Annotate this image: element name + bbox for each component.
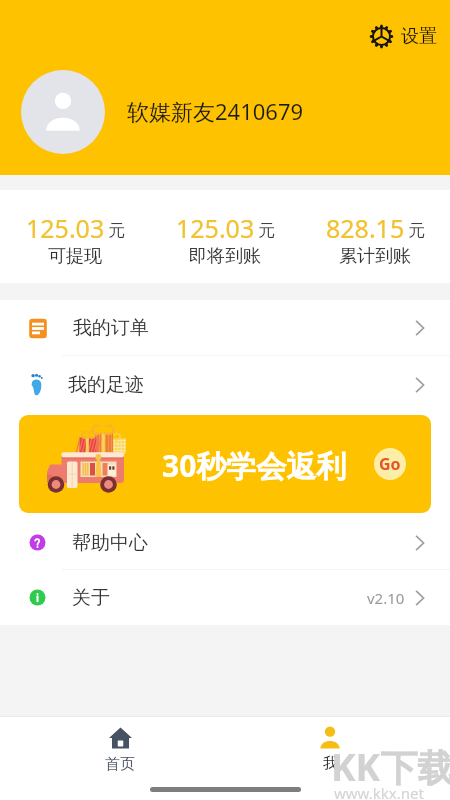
button[interactable]: 125.03 xyxy=(150,190,300,283)
staticText: 125.03 xyxy=(176,211,255,245)
staticText: 即将到账 xyxy=(189,245,261,268)
staticText: 关于 xyxy=(72,586,110,610)
staticText: www.kkx.net xyxy=(334,783,424,800)
staticText: 我 xyxy=(323,754,338,773)
staticText: 30秒学会返利 xyxy=(162,445,347,486)
staticText: 首页 xyxy=(105,755,135,774)
other: Profile avatar xyxy=(21,70,105,154)
staticText: 设置 xyxy=(401,25,437,48)
staticText: 可提现 xyxy=(48,245,102,268)
staticText: 我的订单 xyxy=(73,316,149,340)
button[interactable]: Profile avatar xyxy=(21,70,304,154)
button[interactable]: 我的足迹 xyxy=(0,356,450,413)
staticText: 828.15 xyxy=(326,211,405,245)
staticText: 软媒新友2410679 xyxy=(127,96,304,126)
staticText: v2.10 xyxy=(367,588,405,608)
button[interactable]: 我的订单 xyxy=(0,300,450,356)
button[interactable]: 125.03 xyxy=(0,190,150,283)
staticText: Go xyxy=(379,453,401,475)
button[interactable]: 30秒学会返利 xyxy=(19,415,431,513)
staticText: KK下载 xyxy=(331,741,450,792)
button[interactable]: 828.15 xyxy=(300,190,450,283)
staticText: 累计到账 xyxy=(339,245,411,268)
button[interactable]: 设置 xyxy=(366,21,441,52)
staticText: 我的足迹 xyxy=(68,373,144,397)
button[interactable]: 首页 xyxy=(60,717,180,774)
staticText: 元 xyxy=(408,220,425,241)
button[interactable]: 我 xyxy=(270,717,390,773)
button[interactable]: 关于 xyxy=(0,570,450,625)
staticText: 元 xyxy=(108,220,125,241)
staticText: 帮助中心 xyxy=(72,531,148,555)
staticText: 125.03 xyxy=(26,211,105,245)
button[interactable]: 帮助中心 xyxy=(0,515,450,570)
staticText: 元 xyxy=(258,220,275,241)
